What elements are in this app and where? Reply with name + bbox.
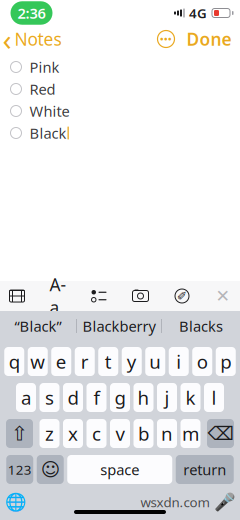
staticText: f: [93, 385, 99, 410]
button[interactable]: d: [63, 383, 83, 412]
button[interactable]: z: [39, 419, 59, 448]
button[interactable]: h: [133, 383, 153, 412]
staticText: Blackberry: [82, 316, 155, 336]
staticText: 4G: [189, 4, 207, 22]
staticText: Aa: [49, 273, 66, 319]
staticText: 🎤: [213, 492, 235, 512]
button[interactable]: Blackberry: [77, 312, 161, 340]
staticText: k: [185, 385, 195, 410]
button[interactable]: e: [51, 347, 71, 376]
button[interactable]: l: [204, 383, 224, 412]
staticText: p: [220, 349, 231, 374]
button[interactable]: ‹: [0, 15, 61, 62]
staticText: y: [127, 349, 137, 374]
button[interactable]: Done: [178, 23, 239, 54]
staticText: t: [105, 349, 112, 374]
button[interactable]: Shift: [6, 419, 33, 448]
button[interactable]: t: [98, 347, 118, 376]
staticText: return: [183, 460, 226, 479]
staticText: s: [45, 385, 54, 410]
button[interactable]: Delete: [207, 419, 234, 448]
staticText: m: [182, 421, 199, 446]
staticText: d: [67, 385, 78, 410]
staticText: ✐: [177, 289, 187, 303]
button[interactable]: Black: [0, 122, 240, 144]
staticText: 2:36: [17, 3, 45, 23]
staticText: v: [115, 421, 124, 446]
staticText: 123: [8, 461, 32, 478]
staticText: g: [114, 385, 125, 410]
button[interactable]: n: [157, 419, 177, 448]
staticText: “Black”: [14, 316, 61, 336]
button[interactable]: Format: [41, 289, 74, 303]
button[interactable]: c: [86, 419, 106, 448]
button[interactable]: v: [110, 419, 130, 448]
staticText: 🌐: [4, 492, 26, 512]
staticText: w: [30, 349, 45, 374]
staticText: ⇧: [11, 422, 28, 445]
button[interactable]: r: [75, 347, 95, 376]
button[interactable]: i: [169, 347, 189, 376]
staticText: n: [161, 421, 173, 446]
button[interactable]: y: [122, 347, 142, 376]
button[interactable]: f: [86, 383, 106, 412]
button[interactable]: Checklist: [82, 289, 115, 303]
button[interactable]: Red: [0, 78, 240, 100]
button[interactable]: Table: [0, 289, 33, 303]
staticText: h: [137, 385, 149, 410]
staticText: b: [138, 421, 149, 446]
button[interactable]: b: [133, 419, 153, 448]
staticText: x: [68, 421, 78, 446]
button[interactable]: return: [176, 455, 234, 484]
button[interactable]: Dictate: [213, 491, 235, 513]
staticText: q: [9, 349, 20, 374]
button[interactable]: w: [28, 347, 48, 376]
staticText: wsxdn.com: [140, 493, 209, 511]
staticText: c: [92, 421, 101, 446]
button[interactable]: Blacks: [162, 312, 240, 340]
staticText: i: [176, 349, 181, 374]
button[interactable]: a: [16, 383, 36, 412]
staticText: ✕: [215, 286, 230, 306]
staticText: ☺: [41, 459, 60, 480]
staticText: ‹: [2, 19, 11, 58]
staticText: ⌫: [207, 423, 233, 444]
staticText: •••: [160, 33, 172, 45]
staticText: space: [100, 460, 139, 479]
button[interactable]: space: [67, 455, 172, 484]
button[interactable]: x: [63, 419, 83, 448]
button[interactable]: j: [157, 383, 177, 412]
button[interactable]: Markup: [165, 289, 198, 303]
staticText: u: [149, 349, 161, 374]
button[interactable]: White: [0, 100, 240, 122]
button[interactable]: Numbers: [6, 455, 33, 484]
staticText: Black: [29, 123, 66, 143]
button[interactable]: s: [39, 383, 59, 412]
staticText: e: [56, 349, 67, 374]
button[interactable]: Close: [206, 289, 239, 303]
button[interactable]: Pink: [0, 56, 240, 78]
staticText: Pink: [29, 57, 59, 77]
button[interactable]: m: [180, 419, 200, 448]
button[interactable]: k: [180, 383, 200, 412]
button[interactable]: p: [216, 347, 236, 376]
button[interactable]: o: [192, 347, 212, 376]
staticText: j: [164, 385, 169, 410]
button[interactable]: Emoji: [37, 455, 64, 484]
staticText: Notes: [14, 27, 61, 50]
staticText: Red: [29, 79, 55, 99]
staticText: a: [21, 385, 31, 410]
button[interactable]: More: [153, 26, 178, 51]
button[interactable]: q: [4, 347, 24, 376]
staticText: o: [197, 349, 208, 374]
button[interactable]: g: [110, 383, 130, 412]
button[interactable]: u: [145, 347, 165, 376]
button[interactable]: Camera: [123, 289, 157, 303]
staticText: r: [81, 349, 89, 374]
staticText: Blacks: [179, 316, 223, 336]
button[interactable]: “Black”: [0, 312, 76, 340]
staticText: z: [45, 421, 54, 446]
staticText: Done: [186, 27, 231, 50]
staticText: l: [211, 385, 216, 410]
button[interactable]: Switch keyboard: [4, 491, 26, 513]
